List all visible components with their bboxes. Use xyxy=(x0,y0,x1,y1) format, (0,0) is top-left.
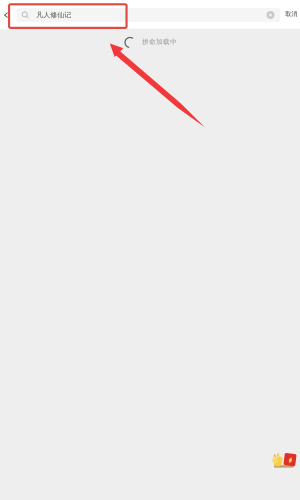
staticText: 取消 xyxy=(285,10,297,18)
staticText: 拼命加载中 xyxy=(142,38,177,46)
staticText: 凡人修仙记 xyxy=(36,11,71,19)
button[interactable]: Clear text xyxy=(266,8,280,22)
button[interactable]: Back xyxy=(0,1,13,29)
button[interactable]: 取消 xyxy=(282,0,300,28)
